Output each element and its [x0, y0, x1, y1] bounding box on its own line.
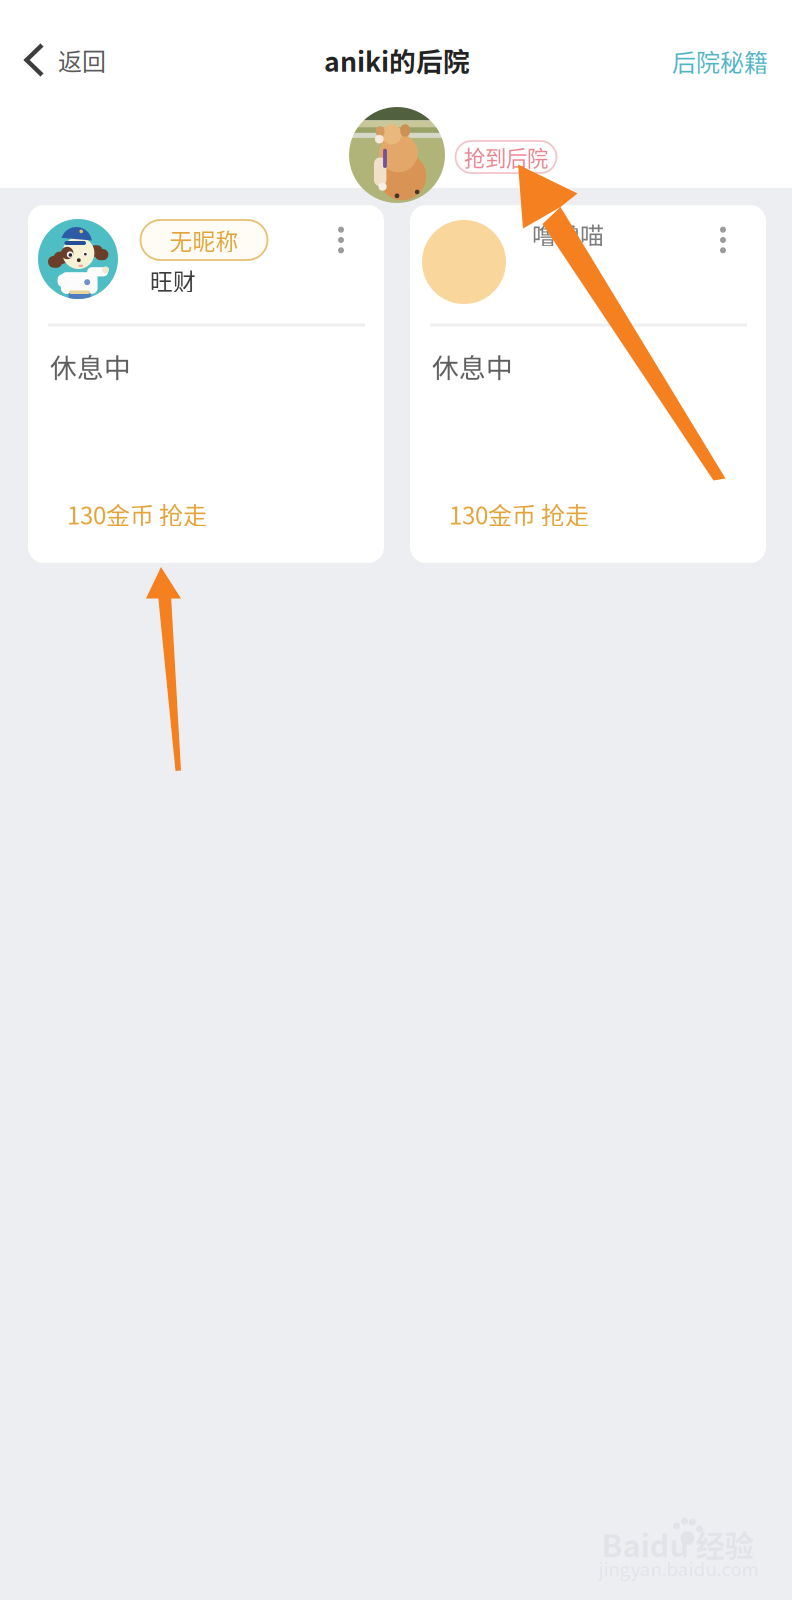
- button[interactable]: 抢到后院: [455, 141, 556, 173]
- button[interactable]: 旺财头像: [38, 219, 118, 299]
- staticText: 噜噜喵: [532, 217, 604, 251]
- staticText: 130金币 抢走: [449, 497, 589, 531]
- button[interactable]: 更多: [326, 223, 356, 257]
- staticText: 后院秘籍: [672, 44, 768, 78]
- button[interactable]: 130金币 抢走: [67, 498, 247, 530]
- button[interactable]: 噜噜喵头像: [422, 220, 506, 304]
- button[interactable]: 后院秘籍: [638, 38, 768, 84]
- staticText: aniki的后院: [324, 41, 470, 79]
- button[interactable]: 更多: [708, 223, 738, 257]
- staticText: 休息中: [432, 347, 513, 385]
- button[interactable]: 我的头像: [349, 107, 445, 203]
- button[interactable]: 130金币 抢走: [449, 498, 629, 530]
- button[interactable]: 无昵称: [140, 220, 267, 260]
- button[interactable]: 返回: [24, 32, 124, 88]
- staticText: 休息中: [50, 347, 131, 385]
- staticText: Baidu: [601, 1522, 689, 1566]
- staticText: 经验: [695, 1523, 753, 1565]
- staticText: 无昵称: [169, 224, 238, 256]
- staticText: 返回: [58, 43, 106, 77]
- staticText: 抢到后院: [464, 142, 548, 172]
- staticText: 130金币 抢走: [67, 497, 207, 531]
- staticText: 旺财: [150, 264, 196, 296]
- staticText: jingyan.baidu.com: [598, 1554, 758, 1581]
